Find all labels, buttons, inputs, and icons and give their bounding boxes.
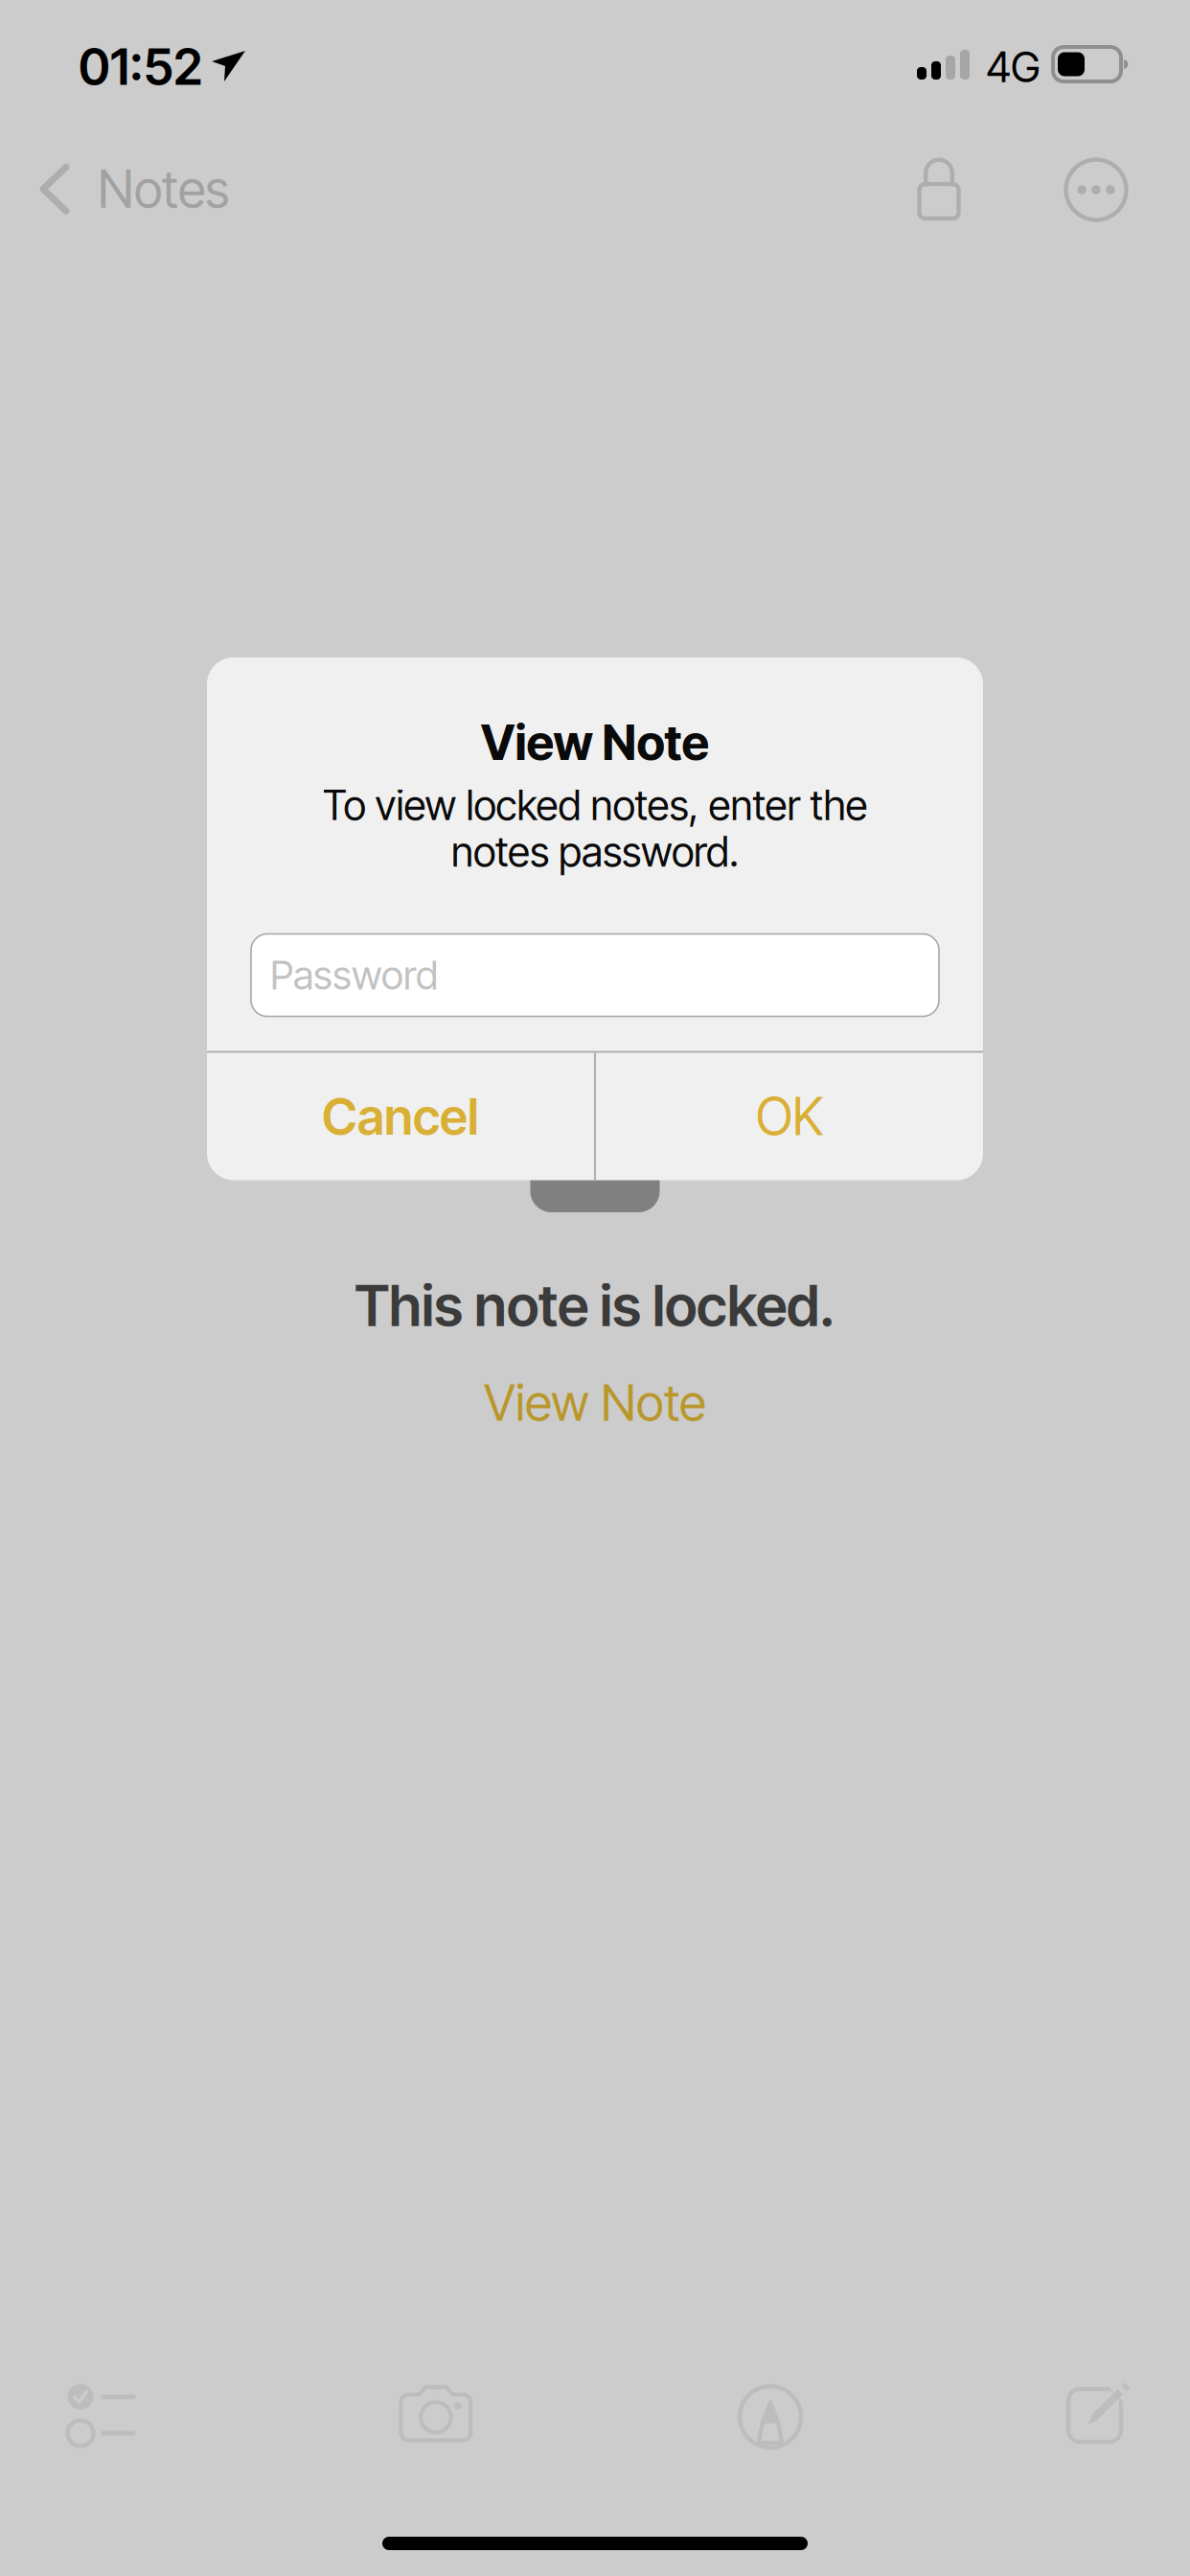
button[interactable]: Markup xyxy=(708,2364,833,2470)
staticText: Password xyxy=(270,951,438,999)
staticText: View Note xyxy=(481,713,709,772)
staticText: notes password. xyxy=(451,827,739,876)
button[interactable]: More xyxy=(1043,142,1149,238)
button[interactable]: Camera xyxy=(374,2361,498,2467)
button[interactable]: Lock Note xyxy=(886,142,992,238)
staticText: Cancel xyxy=(322,1086,479,1147)
button[interactable]: OK xyxy=(596,1053,983,1180)
staticText: 4G xyxy=(986,41,1041,92)
staticText: Notes xyxy=(98,158,229,220)
staticText: 01:52 xyxy=(79,36,202,97)
staticText: View Note xyxy=(484,1372,706,1433)
staticText: To view locked notes, enter the xyxy=(322,780,868,830)
button[interactable]: View Note xyxy=(451,1372,739,1433)
staticText: OK xyxy=(756,1086,823,1147)
button[interactable]: New Note xyxy=(1042,2359,1167,2465)
button[interactable]: Checklist xyxy=(39,2362,164,2468)
button[interactable]: Cancel xyxy=(207,1053,594,1180)
button[interactable]: Notes xyxy=(0,137,258,241)
staticText: This note is locked. xyxy=(355,1272,835,1340)
